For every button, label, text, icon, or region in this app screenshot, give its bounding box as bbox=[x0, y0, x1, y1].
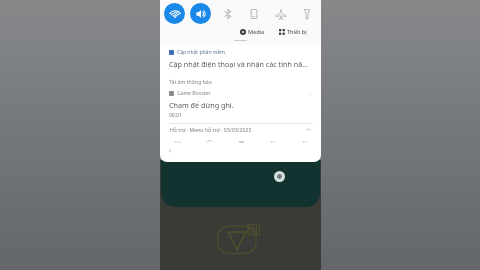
button[interactable]: More bbox=[299, 137, 309, 147]
staticText: 00:01 bbox=[169, 112, 182, 119]
staticText: Game Booster bbox=[177, 90, 211, 97]
staticText: Media bbox=[248, 28, 265, 35]
staticText: Tắt âm thông báo bbox=[169, 78, 212, 85]
button[interactable]: Thiết bị bbox=[277, 27, 309, 36]
button[interactable]: Settings bbox=[236, 137, 246, 147]
button[interactable]: Cập nhật phần mềm bbox=[164, 46, 317, 72]
button[interactable]: Auto rotate bbox=[243, 3, 264, 24]
button[interactable]: Power bbox=[267, 137, 277, 147]
staticText: Cập nhật điện thoại và nhận các tính năn… bbox=[169, 59, 312, 69]
button[interactable]: Game Booster bbox=[164, 87, 317, 122]
button[interactable]: Sound bbox=[190, 3, 211, 24]
button[interactable]: Airplane mode bbox=[270, 3, 291, 24]
button[interactable]: Brightness bbox=[172, 137, 182, 147]
staticText: Hỗ trợ · Menu hỗ trợ · 03/03/2025 bbox=[170, 126, 252, 133]
button[interactable]: Media bbox=[238, 27, 267, 36]
button[interactable]: Flashlight bbox=[296, 3, 317, 24]
button[interactable]: Hỗ trợ · Menu hỗ trợ · 03/03/2025 bbox=[164, 124, 317, 135]
staticText: Chạm để dừng ghi. bbox=[169, 100, 234, 110]
button[interactable]: Recording indicator bbox=[274, 171, 285, 182]
staticText: Cập nhật phần mềm bbox=[177, 49, 225, 56]
staticText: Thiết bị bbox=[287, 28, 307, 35]
button[interactable]: Wi-Fi bbox=[164, 3, 185, 24]
button[interactable]: Do not disturb bbox=[204, 137, 214, 147]
button[interactable]: Bluetooth bbox=[217, 3, 238, 24]
